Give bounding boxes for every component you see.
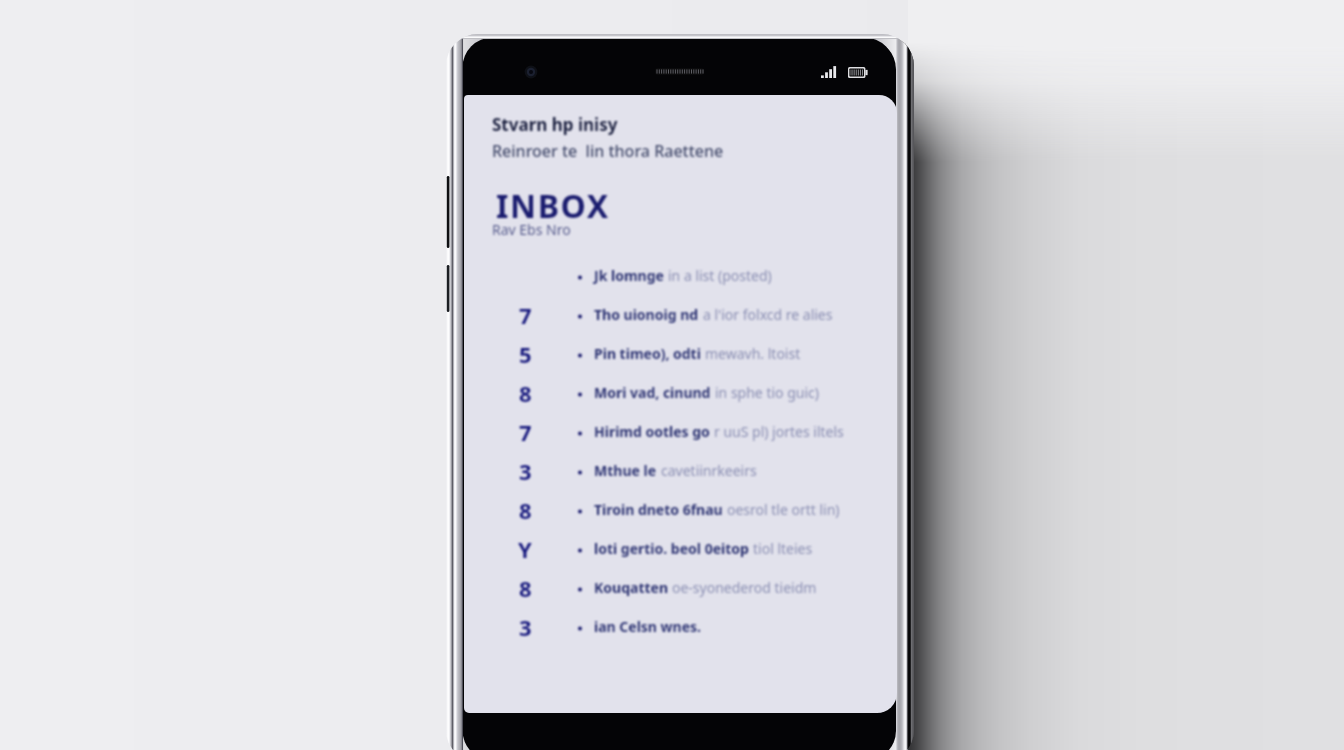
staticText: Reinroer te lin thora Raettene	[492, 140, 724, 162]
staticText: 7	[519, 417, 532, 447]
staticText: Stvarn hp inisy	[492, 113, 618, 136]
staticText: 8	[519, 378, 532, 408]
staticText: 3	[519, 612, 532, 642]
staticText: Mthue le	[594, 461, 657, 480]
staticText: ian Celsn wnes.	[594, 617, 702, 636]
staticText: Jk lomnge	[594, 266, 664, 285]
button[interactable]: 8	[464, 490, 897, 529]
staticText: INBOX	[496, 184, 610, 228]
staticText: Tiroin dneto 6fnau	[594, 500, 723, 519]
button[interactable]: Stvarn hp inisy	[484, 107, 784, 165]
button[interactable]: 7	[464, 295, 897, 334]
staticText: 5	[519, 339, 532, 369]
button[interactable]: 8	[464, 373, 897, 412]
button[interactable]: INBOX	[484, 179, 684, 239]
staticText: Mori vad, cinund	[594, 383, 711, 402]
staticText: oe-syonederod tieidm	[672, 578, 817, 597]
button[interactable]: 3	[464, 451, 897, 490]
button[interactable]: Jk lomnge	[464, 256, 897, 295]
other: Volume buttons	[446, 34, 914, 750]
staticText: oesrol tle ortt lin)	[727, 500, 840, 519]
button[interactable]: Y	[464, 529, 897, 568]
staticText: tiol lteies	[753, 539, 813, 558]
staticText: loti gertio. beol 0eitop	[594, 539, 749, 558]
button[interactable]: 5	[464, 334, 897, 373]
staticText: Pin timeo), odti	[594, 344, 701, 363]
staticText: cavetiinrkeeirs	[661, 461, 757, 480]
staticText: Hirimd ootles go	[594, 422, 710, 441]
staticText: 3	[519, 456, 532, 486]
button[interactable]: 8	[464, 568, 897, 607]
staticText: in a list (posted)	[668, 266, 772, 285]
staticText: 8	[519, 495, 532, 525]
staticText: Y	[518, 534, 532, 564]
button[interactable]: 7	[464, 412, 897, 451]
staticText: 8	[519, 573, 532, 603]
staticText: Kouqatten	[594, 578, 668, 597]
staticText: Tho uionoig nd	[594, 305, 699, 324]
staticText: Rav Ebs Nro	[492, 220, 571, 239]
staticText: r uuS pl) jortes iltels	[714, 422, 844, 441]
staticText: mewavh. ltoist	[705, 344, 801, 363]
staticText: in sphe tio guic)	[715, 383, 819, 402]
button[interactable]: 3	[464, 607, 897, 646]
staticText: 7	[519, 300, 532, 330]
staticText: a l'ior folxcd re alies	[703, 305, 833, 324]
